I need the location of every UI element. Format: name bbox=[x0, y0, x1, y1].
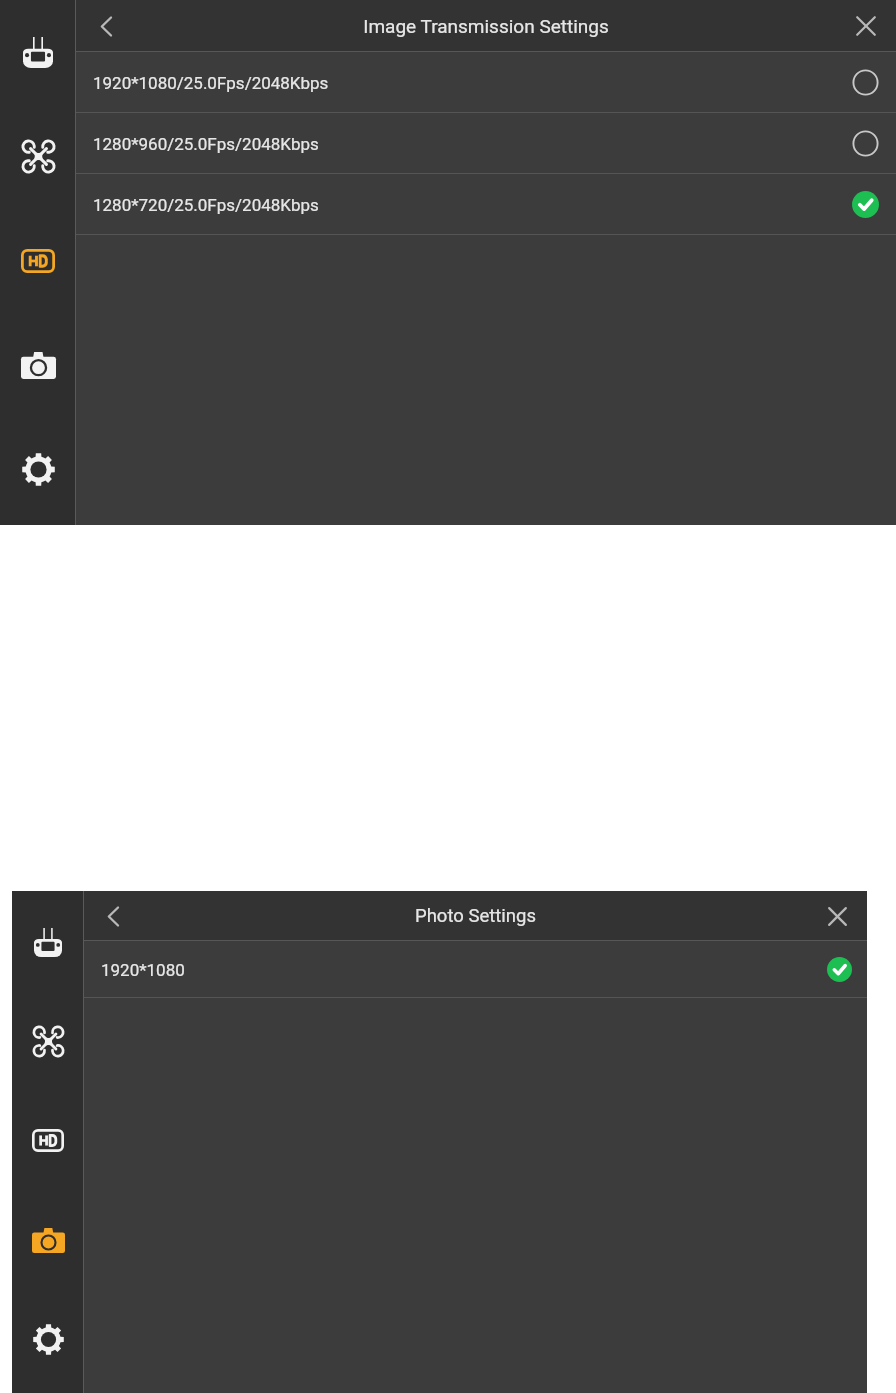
button[interactable]: Remote Controller bbox=[0, 26, 76, 78]
button[interactable]: Aircraft bbox=[12, 1015, 84, 1067]
button[interactable]: 1280*960/25.0Fps/2048Kbps bbox=[76, 113, 896, 174]
button[interactable]: General Settings bbox=[0, 443, 76, 495]
button[interactable]: Aircraft bbox=[0, 130, 76, 182]
staticText: 1920*1080 bbox=[101, 960, 185, 980]
button[interactable]: 1920*1080 bbox=[84, 941, 867, 998]
staticText: 1920*1080/25.0Fps/2048Kbps bbox=[93, 73, 329, 93]
button[interactable]: Close bbox=[844, 4, 888, 48]
staticText: 1280*960/25.0Fps/2048Kbps bbox=[93, 134, 319, 154]
button[interactable]: Camera bbox=[12, 1214, 84, 1266]
button[interactable]: Back bbox=[84, 4, 128, 48]
button[interactable]: Image Transmission bbox=[12, 1114, 84, 1166]
staticText: Image Transmission Settings bbox=[363, 15, 609, 37]
button[interactable]: Camera bbox=[0, 339, 76, 391]
button[interactable]: Remote Controller bbox=[12, 916, 84, 968]
button[interactable]: 1280*720/25.0Fps/2048Kbps bbox=[76, 174, 896, 235]
button[interactable]: Close bbox=[815, 894, 859, 938]
button[interactable]: Image Transmission bbox=[0, 235, 76, 287]
button[interactable]: Back bbox=[91, 894, 135, 938]
staticText: Photo Settings bbox=[415, 905, 536, 927]
button[interactable]: General Settings bbox=[12, 1313, 84, 1365]
staticText: 1280*720/25.0Fps/2048Kbps bbox=[93, 195, 319, 215]
button[interactable]: 1920*1080/25.0Fps/2048Kbps bbox=[76, 52, 896, 113]
